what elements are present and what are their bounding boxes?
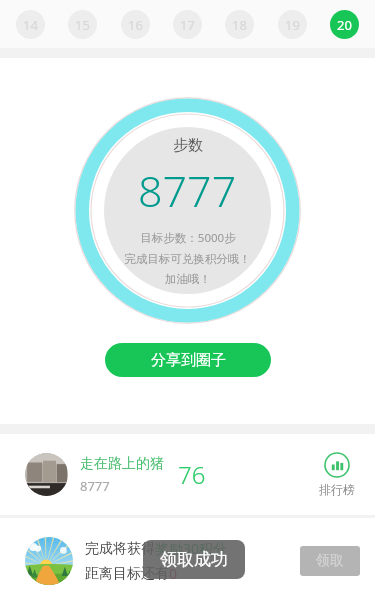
button[interactable]: 16 [121,10,150,39]
button[interactable]: 15 [68,10,97,39]
staticText: 目标步数：5000步 [140,230,236,246]
button[interactable]: 领取 [300,546,360,576]
button[interactable]: 排行榜 [313,448,361,501]
button[interactable]: 走在路上的猪 [0,434,375,515]
staticText: 0 [169,564,178,583]
staticText: 8777 [80,477,110,495]
staticText: 16 [128,16,143,34]
button[interactable]: 18 [225,10,254,39]
staticText: 14 [23,16,38,34]
staticText: 完成目标可兑换积分哦！ [124,252,251,266]
staticText: 76 [178,458,206,491]
button[interactable]: 分享到圈子 [105,343,271,377]
staticText: 15 [75,16,90,34]
staticText: 17 [180,16,195,34]
staticText: 18 [232,16,247,34]
staticText: 步数 [173,136,203,155]
button[interactable]: 17 [173,10,202,39]
staticText: 走在路上的猪 [80,455,164,473]
staticText: 分享到圈子 [151,351,226,370]
staticText: 排行榜 [319,482,355,497]
staticText: 完成将获得 [85,540,155,558]
button[interactable]: 19 [278,10,307,39]
staticText: 奖励30积分 [155,539,228,558]
staticText: 距离目标还有 [85,565,169,583]
staticText: 19 [285,16,300,34]
button[interactable]: 20 [330,10,359,39]
staticText: 领取成功 [160,549,228,570]
staticText: 20 [337,16,352,34]
button[interactable]: 14 [16,10,45,39]
staticText: 领取 [316,552,344,570]
staticText: 加油哦！ [165,272,211,286]
staticText: 8777 [138,161,237,220]
